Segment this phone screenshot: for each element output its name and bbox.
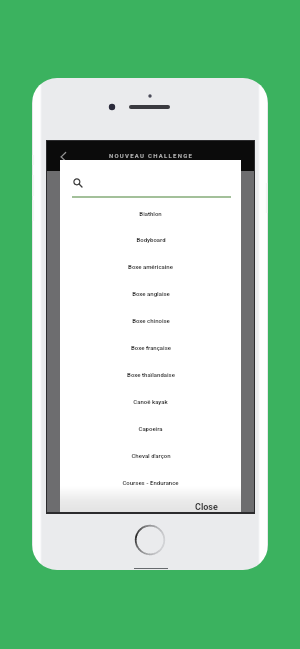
staticText: Boxe thaïlandaise: [127, 371, 175, 378]
button[interactable]: Canoë kayak: [60, 388, 241, 415]
staticText: Capoeira: [138, 425, 163, 432]
button[interactable]: Close: [192, 500, 221, 515]
staticText: Boxe française: [131, 344, 171, 351]
staticText: Cheval d'arçon: [131, 452, 171, 459]
staticText: Biathlon: [139, 210, 162, 217]
staticText: Close: [195, 502, 218, 513]
button[interactable]: Capoeira: [60, 415, 241, 442]
button[interactable]: Cheval d'arçon: [60, 442, 241, 469]
staticText: Boxe anglaise: [132, 290, 170, 297]
staticText: Canoë kayak: [133, 398, 168, 405]
button[interactable]: Back: [52, 145, 74, 167]
button[interactable]: Biathlon: [60, 200, 241, 227]
staticText: Boxe chinoise: [132, 317, 170, 324]
staticText: NOUVEAU CHALLENGE: [109, 152, 194, 159]
button[interactable]: Courses - Endurance: [60, 469, 241, 496]
button[interactable]: Boxe française: [60, 334, 241, 361]
button[interactable]: Boxe thaïlandaise: [60, 361, 241, 388]
button[interactable]: Bodyboard: [60, 226, 241, 253]
button[interactable]: Boxe américaine: [60, 253, 241, 280]
button[interactable]: Boxe chinoise: [60, 307, 241, 334]
staticText: Courses - Endurance: [122, 479, 179, 486]
staticText: Bodyboard: [136, 236, 166, 243]
button[interactable]: Boxe anglaise: [60, 280, 241, 307]
staticText: Boxe américaine: [128, 263, 173, 270]
